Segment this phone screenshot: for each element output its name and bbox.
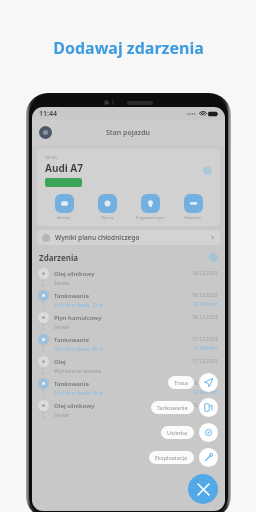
staticText: 11:44	[39, 109, 57, 119]
button[interactable]: Tankowanie	[32, 332, 225, 354]
button[interactable]: Tankowanie	[32, 376, 225, 398]
staticText: Tankowanie	[157, 404, 188, 411]
staticText: 12 890 km	[193, 345, 218, 352]
staticText: 18.12.2023	[192, 314, 218, 321]
button[interactable]: Menu	[39, 126, 52, 139]
button[interactable]: Zamknij	[188, 474, 218, 504]
button[interactable]: Płyn hamulcowy	[32, 310, 225, 332]
staticText: Zdarzenia	[39, 252, 79, 263]
staticText: 16.12.2023	[192, 402, 218, 409]
staticText: 16.12.2023	[192, 380, 218, 387]
staticText: Olej silnikowy	[54, 270, 95, 278]
button[interactable]: NR REJ.	[37, 149, 220, 226]
staticText: Olej silnikowy	[54, 402, 95, 410]
staticText: Usterka	[167, 429, 188, 436]
button[interactable]: Tankowanie	[32, 288, 225, 310]
staticText: Tankowanie	[54, 292, 89, 300]
button[interactable]: Wyniki planu chłodniczego	[37, 230, 220, 245]
staticText: NR REJ.	[45, 155, 59, 160]
staticText: Audi A7	[45, 161, 83, 175]
staticText: 12 890 km	[193, 301, 218, 308]
staticText: Odometr	[184, 215, 202, 220]
staticText: Serwis	[54, 412, 70, 419]
staticText: 45.1 litra diesla, 80 zł	[54, 346, 103, 353]
button[interactable]: Opony	[88, 194, 126, 220]
button[interactable]: Eksploatacja	[149, 448, 218, 467]
staticText: Serwis	[54, 324, 70, 331]
staticText: Olej	[54, 358, 66, 366]
staticText: Eksploatacja	[155, 454, 188, 461]
button[interactable]: Filtruj	[209, 253, 218, 262]
staticText: Wymiana w serwisie	[54, 368, 102, 375]
staticText: Wyniki planu chłodniczego	[55, 233, 140, 242]
button[interactable]: Tankowanie	[151, 398, 218, 417]
staticText: 50.3 litra diesla, 66 zł	[54, 390, 103, 397]
staticText: Trasa	[174, 379, 188, 386]
button[interactable]: Pogwarancyjne	[131, 194, 169, 220]
staticText: Dodawaj zdarzenia	[53, 37, 204, 59]
staticText: 18.12.2023	[192, 292, 218, 299]
staticText: 17.12.2023	[192, 358, 218, 365]
staticText: Tankowanie	[54, 380, 89, 388]
staticText: Pogwarancyjne	[136, 215, 165, 220]
staticText: 18.12.2023	[192, 270, 218, 277]
button[interactable]: Olej silnikowy	[32, 398, 225, 420]
staticText: Alarmy	[57, 215, 71, 220]
button[interactable]: Trasa	[168, 373, 218, 392]
staticText: Płyn hamulcowy	[54, 314, 102, 322]
button[interactable]: Olej silnikowy	[32, 266, 225, 288]
button[interactable]: Odometr	[174, 194, 212, 220]
staticText: 48.5 litra diesla, 72 zł	[54, 302, 103, 309]
staticText: Tankowanie	[54, 336, 89, 344]
staticText: 12 890 km	[193, 389, 218, 396]
button[interactable]: Alarmy	[45, 194, 83, 220]
staticText: Opony	[101, 215, 114, 220]
staticText: Stan pojazdu	[106, 128, 151, 138]
staticText: Serwis	[54, 280, 70, 287]
staticText: 17.12.2023	[192, 336, 218, 343]
button[interactable]: Olej	[32, 354, 225, 376]
button[interactable]: Stan pojazdu	[32, 120, 225, 145]
button[interactable]: Usterka	[161, 423, 218, 442]
